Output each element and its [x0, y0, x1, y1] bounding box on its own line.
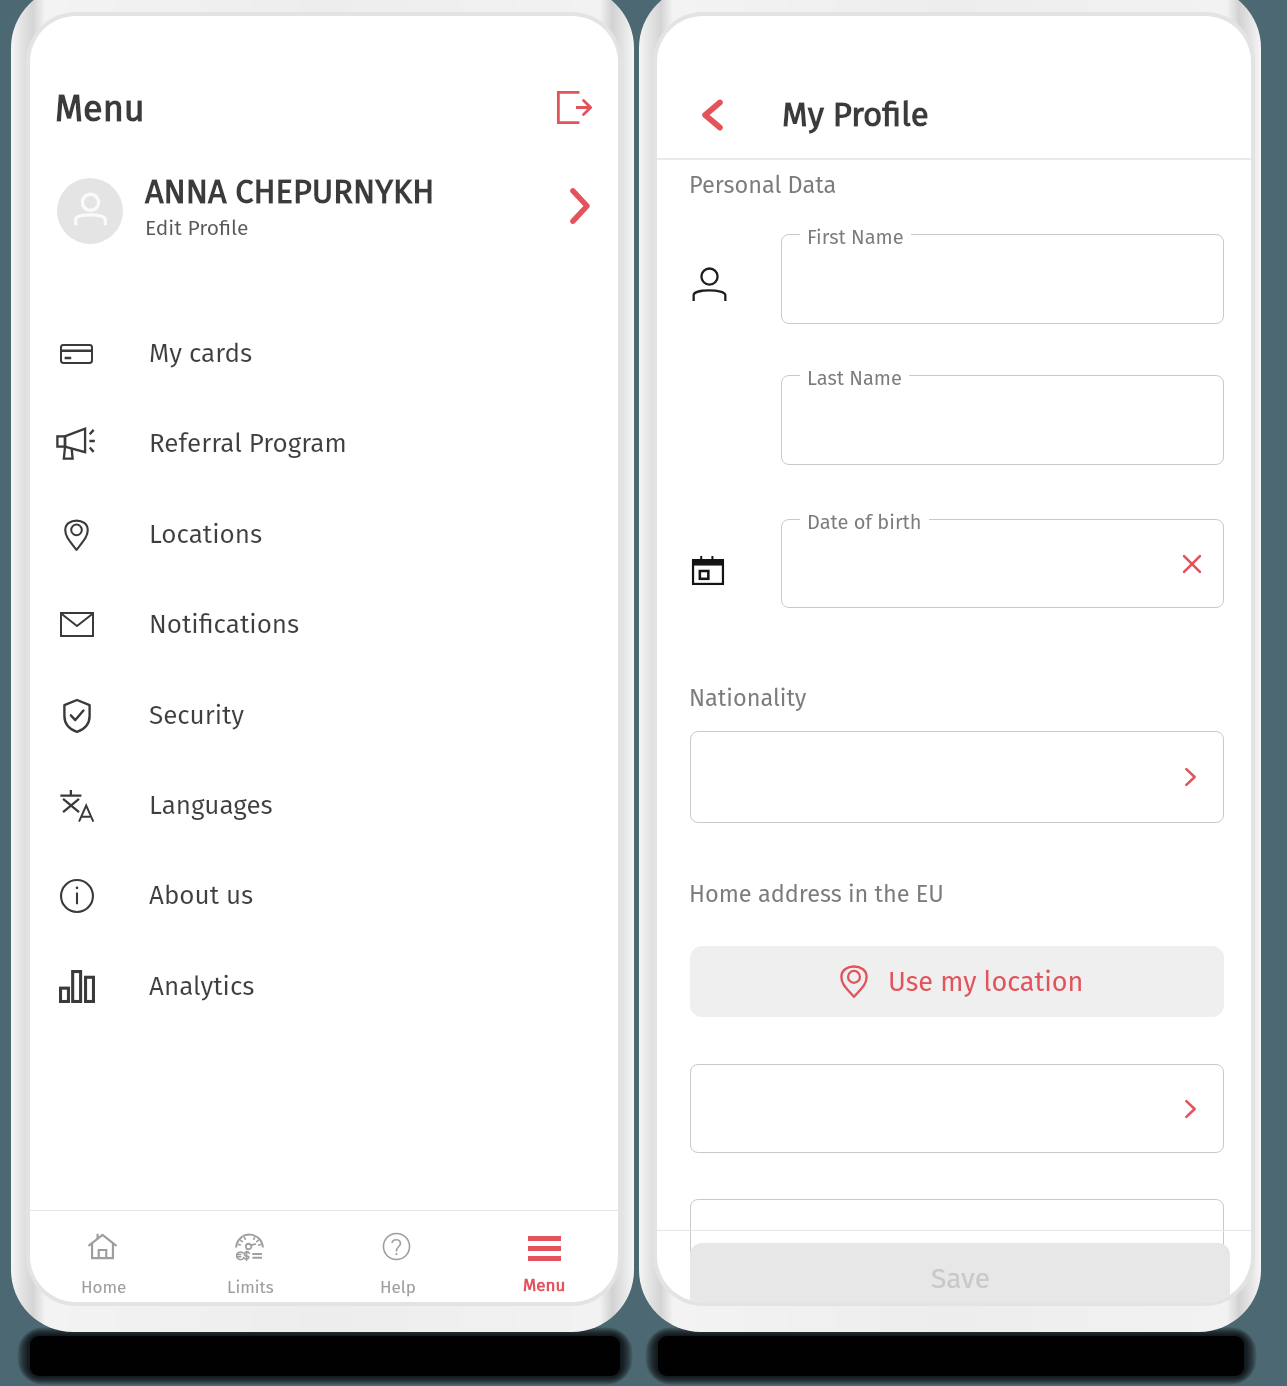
staticText: Notifications — [149, 609, 300, 640]
button[interactable]: Analytics — [30, 941, 618, 1031]
button[interactable]: Home — [30, 1215, 177, 1302]
button[interactable]: Back — [683, 86, 741, 144]
staticText: My cards — [149, 338, 253, 369]
button[interactable]: Select — [690, 1064, 1224, 1153]
staticText: Help — [380, 1277, 416, 1297]
staticText: Personal Data — [689, 171, 837, 199]
staticText: Locations — [149, 519, 263, 550]
staticText: Use my location — [888, 966, 1084, 998]
button[interactable]: Referral Program — [30, 398, 618, 488]
button[interactable]: Select — [690, 731, 1224, 823]
staticText: Edit Profile — [145, 215, 249, 240]
staticText: Menu — [523, 1275, 566, 1295]
button[interactable]: Log out — [551, 84, 597, 130]
button[interactable]: My cards — [30, 308, 618, 398]
button[interactable]: About us — [30, 850, 618, 940]
staticText: About us — [149, 880, 254, 911]
staticText: Limits — [227, 1277, 274, 1297]
button[interactable]: ANNA CHEPURNYKH — [30, 160, 618, 252]
staticText: Save — [931, 1262, 990, 1296]
staticText: Languages — [149, 790, 273, 821]
staticText: Analytics — [149, 971, 255, 1002]
button[interactable] — [781, 375, 1224, 465]
button[interactable]: Notifications — [30, 579, 618, 669]
staticText: Referral Program — [149, 428, 347, 459]
button[interactable]: Clear — [1170, 542, 1214, 586]
button[interactable]: Locations — [30, 489, 618, 579]
button[interactable]: Limits — [177, 1215, 324, 1302]
button[interactable]: Security — [30, 670, 618, 760]
staticText: Home address in the EU — [689, 880, 944, 908]
button[interactable] — [781, 234, 1224, 324]
staticText: My Profile — [782, 95, 929, 135]
staticText: Security — [149, 700, 245, 731]
staticText: First Name — [807, 225, 904, 249]
staticText: Last Name — [807, 366, 902, 390]
staticText: Date of birth — [807, 510, 922, 534]
staticText: Home — [81, 1277, 127, 1297]
staticText: Nationality — [689, 684, 807, 712]
button[interactable] — [690, 1199, 1224, 1289]
staticText: ANNA CHEPURNYKH — [145, 173, 435, 212]
button[interactable]: Use my location — [690, 946, 1224, 1017]
button[interactable] — [781, 519, 1224, 608]
button[interactable]: Help — [324, 1215, 471, 1302]
staticText: Menu — [55, 87, 145, 130]
button[interactable]: Save — [690, 1243, 1230, 1302]
button[interactable]: Languages — [30, 760, 618, 850]
button[interactable]: Menu — [471, 1215, 618, 1302]
